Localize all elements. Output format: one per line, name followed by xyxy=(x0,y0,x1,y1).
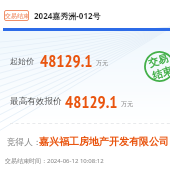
staticText: 万元 xyxy=(121,100,133,108)
button[interactable]: 交易结束 xyxy=(4,10,29,21)
staticText: 2024嘉秀洲-012号 xyxy=(34,10,101,21)
staticText: 万元 xyxy=(96,59,108,67)
staticText: 起始价 xyxy=(10,56,34,66)
staticText: 嘉兴福工房地产开发有限公司 xyxy=(39,135,169,148)
staticText: 交易结束时间：2024-06-12 10:08:12 xyxy=(5,157,104,165)
other: 交易结束印章 xyxy=(140,47,170,86)
staticText: 交易 xyxy=(147,51,170,70)
staticText: 结束 xyxy=(151,64,170,82)
staticText: 最高有效报价 xyxy=(10,96,62,107)
staticText: 48129.1 xyxy=(65,91,118,113)
staticText: 交易结束 xyxy=(5,12,29,20)
staticText: 48129.1 xyxy=(40,50,93,72)
staticText: 竞得人： xyxy=(7,137,42,148)
